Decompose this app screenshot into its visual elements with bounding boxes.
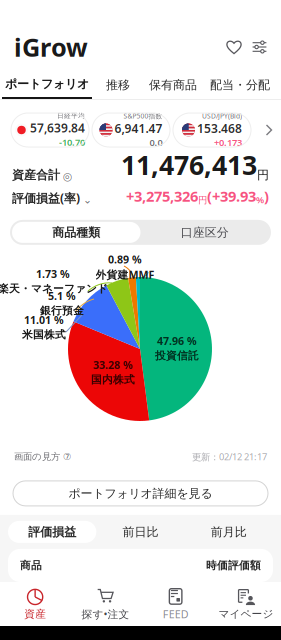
button[interactable]: 探す•注文 — [70, 583, 140, 625]
staticText: マイページ — [218, 607, 273, 620]
staticText: USD/JPY(Bid) — [202, 111, 242, 120]
button[interactable]: 次へ — [263, 124, 275, 136]
button[interactable]: 設定 — [247, 39, 272, 54]
staticText: 47.96 % — [157, 334, 197, 348]
staticText: 保有商品 — [149, 78, 197, 92]
staticText: ◎ — [60, 170, 72, 182]
button[interactable]: ポートフォリオ詳細を見る — [13, 481, 268, 506]
staticText: 商品種類 — [52, 225, 100, 240]
button[interactable]: 推移 — [94, 72, 142, 98]
button[interactable]: お気に入り — [221, 39, 247, 55]
staticText: ポートフォリオ — [5, 77, 89, 91]
staticText: 11,476,413 — [121, 147, 257, 182]
staticText: ) — [264, 186, 269, 206]
staticText: 配当・分配 — [210, 78, 270, 92]
staticText: 0.0 — [149, 136, 162, 149]
staticText: 153.468 — [197, 120, 242, 136]
button[interactable]: 配当・分配 — [204, 72, 276, 98]
button[interactable]: S&P500指数 — [92, 113, 170, 147]
staticText: % — [256, 193, 264, 206]
staticText: 0.89 % — [108, 252, 142, 266]
staticText: 57,639.84 — [30, 120, 85, 136]
staticText: iGrow — [14, 30, 88, 64]
button[interactable]: マイページ — [211, 583, 281, 624]
staticText: 5.1 % — [48, 289, 76, 303]
staticText: ポートフォリオ詳細を見る — [68, 486, 212, 501]
staticText: 銀行預金 — [40, 304, 84, 317]
staticText: 資産 — [24, 607, 46, 620]
staticText: 投資信託 — [155, 349, 199, 362]
staticText: ⑦ — [60, 451, 71, 462]
staticText: 11.01 % — [24, 313, 64, 327]
staticText: 外貨建MMF — [95, 267, 154, 282]
button[interactable]: 評価損益 — [8, 521, 96, 543]
staticText: 時価評価額 — [206, 559, 261, 572]
staticText: -10.70 — [59, 136, 85, 148]
staticText: 前月比 — [211, 524, 247, 539]
button[interactable]: 前日比 — [96, 521, 185, 543]
button[interactable]: 日経平均 — [11, 113, 89, 147]
staticText: 更新：02/12 21:17 — [192, 450, 267, 463]
button[interactable]: FEED — [140, 583, 211, 625]
button[interactable]: ポートフォリオ — [0, 71, 94, 99]
button[interactable]: USD/JPY(Bid) — [173, 113, 251, 147]
staticText: 資産合計 — [12, 168, 60, 182]
staticText: FEED — [163, 607, 189, 621]
button[interactable]: 資産 — [0, 583, 70, 624]
staticText: 口座区分 — [181, 225, 229, 240]
staticText: 推移 — [106, 78, 130, 92]
staticText: 円 — [257, 168, 269, 182]
staticText: 評価損益(率) — [12, 190, 80, 206]
button[interactable]: 商品種類 — [12, 222, 140, 243]
staticText: 6,941.47 — [114, 120, 162, 136]
staticText: 1.73 % — [36, 267, 70, 281]
staticText: +0.173 — [214, 136, 242, 149]
staticText: ⌄ — [80, 194, 92, 206]
staticText: S&P500指数 — [123, 111, 162, 120]
button[interactable]: 保有商品 — [142, 72, 204, 98]
staticText: 楽天・マネーファンド — [0, 282, 108, 295]
staticText: 日経平均 — [57, 112, 85, 120]
staticText: 商品 — [20, 559, 42, 572]
staticText: +3,275,326 — [126, 186, 198, 206]
staticText: 画面の見方 — [14, 451, 60, 462]
staticText: 国内株式 — [91, 373, 135, 386]
staticText: 米国株式 — [22, 328, 66, 341]
staticText: (+39.93 — [207, 186, 256, 206]
staticText: 円 — [198, 194, 207, 206]
staticText: 33.28 % — [93, 358, 133, 372]
staticText: 探す•注文 — [81, 607, 129, 621]
button[interactable]: 前月比 — [185, 521, 273, 543]
staticText: 評価損益 — [28, 524, 76, 539]
staticText: 前日比 — [122, 524, 158, 539]
button[interactable]: 口座区分 — [140, 222, 269, 243]
